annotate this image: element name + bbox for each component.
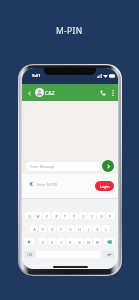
button[interactable]: Shift	[24, 238, 34, 245]
button[interactable]: U	[79, 212, 87, 219]
staticText: J	[88, 227, 89, 231]
staticText: H	[78, 227, 81, 231]
staticText: Z	[42, 240, 44, 244]
button[interactable]: P	[106, 212, 114, 219]
button[interactable]: I	[88, 212, 96, 219]
staticText: I	[91, 214, 93, 218]
button[interactable]: Login	[95, 181, 114, 191]
staticText: G	[69, 227, 72, 231]
staticText: M	[96, 240, 99, 244]
button[interactable]: X	[48, 238, 56, 245]
button[interactable]: D	[48, 225, 56, 232]
button[interactable]: H	[75, 225, 83, 232]
button[interactable]: K	[93, 225, 101, 232]
staticText: F	[60, 227, 62, 231]
button[interactable]: F	[57, 225, 65, 232]
button[interactable]: M	[93, 238, 101, 245]
staticText: L	[105, 227, 107, 231]
staticText: V	[69, 240, 71, 244]
button[interactable]: Return	[103, 251, 114, 258]
staticText: S	[42, 227, 44, 231]
staticText: Login	[100, 184, 110, 189]
button[interactable]: Send	[102, 160, 114, 172]
staticText: Y	[73, 214, 75, 218]
staticText: T	[64, 214, 66, 218]
button[interactable]: Z	[39, 238, 47, 245]
button[interactable]: Backspace	[104, 238, 114, 245]
staticText: Enter Message	[30, 164, 55, 169]
button[interactable]: V	[66, 238, 74, 245]
staticText: O	[100, 214, 103, 218]
button[interactable]: Enter Message	[26, 162, 101, 171]
button[interactable]: S	[39, 225, 47, 232]
staticText: C&Z	[45, 90, 55, 97]
button[interactable]: Call	[98, 88, 108, 98]
button[interactable]: T	[61, 212, 69, 219]
staticText: 123	[27, 253, 33, 257]
button[interactable]: Y	[70, 212, 78, 219]
button[interactable]: N	[84, 238, 92, 245]
button[interactable]: J	[84, 225, 92, 232]
button[interactable]: Q	[25, 212, 33, 219]
staticText: E	[46, 214, 48, 218]
staticText: N	[87, 240, 90, 244]
button[interactable]: B	[75, 238, 83, 245]
button[interactable]: L	[102, 225, 110, 232]
staticText: K	[96, 227, 99, 231]
staticText: P	[109, 214, 111, 218]
staticText: B	[78, 240, 81, 244]
button[interactable]: E	[43, 212, 51, 219]
button[interactable]: C	[57, 238, 65, 245]
staticText: 9:41	[32, 73, 41, 79]
staticText: M-PIN	[56, 25, 83, 37]
staticText: U	[82, 214, 85, 218]
button[interactable]: R	[52, 212, 60, 219]
staticText: A	[33, 227, 36, 231]
staticText: Q	[28, 214, 31, 218]
staticText: R	[55, 214, 58, 218]
button[interactable]: W	[34, 212, 42, 219]
staticText: D	[51, 227, 54, 231]
button[interactable]: Back	[25, 89, 33, 97]
staticText: Enter M-PIN	[37, 182, 57, 187]
button[interactable]: More options	[108, 88, 117, 97]
button[interactable]: G	[66, 225, 74, 232]
staticText: W	[36, 214, 40, 218]
button[interactable]: Previous	[27, 180, 34, 187]
button[interactable]: O	[97, 212, 105, 219]
button[interactable]: A	[30, 225, 38, 232]
staticText: C	[60, 240, 63, 244]
staticText: X	[51, 240, 53, 244]
button[interactable]: Numbers	[24, 251, 35, 258]
